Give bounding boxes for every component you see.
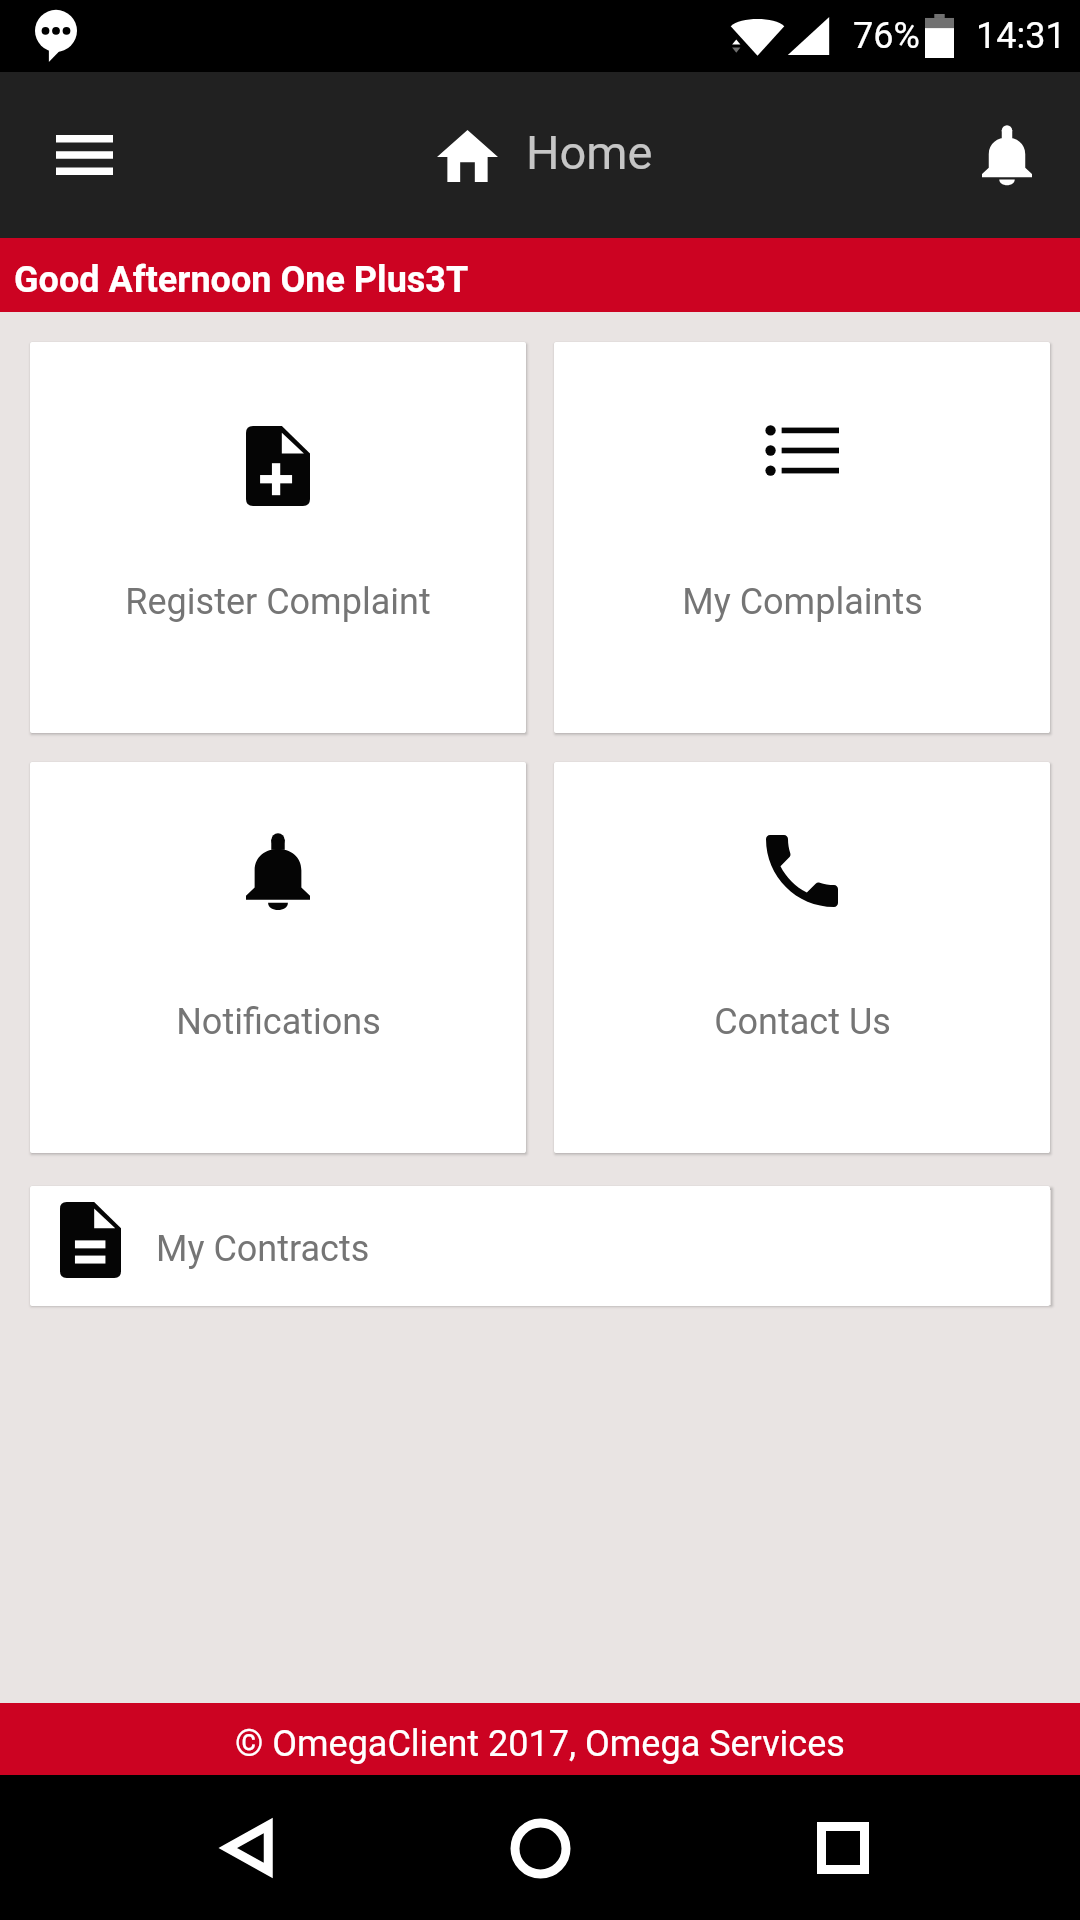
staticText: Notifications bbox=[176, 1001, 381, 1043]
staticText: My Contracts bbox=[156, 1228, 370, 1270]
button[interactable]: Back bbox=[173, 1783, 303, 1913]
button[interactable]: Notifications bbox=[952, 100, 1062, 210]
staticText: 76% bbox=[853, 15, 920, 57]
button[interactable]: My Contracts bbox=[30, 1186, 1050, 1306]
staticText: Home bbox=[526, 125, 653, 180]
button[interactable]: Register Complaint bbox=[30, 342, 526, 733]
button[interactable]: Contact Us bbox=[554, 762, 1050, 1153]
staticText: Contact Us bbox=[714, 1001, 891, 1043]
button[interactable]: My Complaints bbox=[554, 342, 1050, 733]
staticText: © OmegaClient 2017, Omega Services bbox=[235, 1723, 845, 1765]
staticText: Register Complaint bbox=[125, 581, 431, 623]
button[interactable]: Open navigation menu bbox=[27, 98, 141, 212]
staticText: Good Afternoon One Plus3T bbox=[14, 259, 469, 301]
button[interactable]: Notifications bbox=[30, 762, 526, 1153]
button[interactable]: Home bbox=[475, 1783, 605, 1913]
staticText: 14:31 bbox=[976, 15, 1066, 57]
staticText: My Complaints bbox=[682, 581, 923, 623]
button[interactable]: Recent apps bbox=[778, 1783, 908, 1913]
